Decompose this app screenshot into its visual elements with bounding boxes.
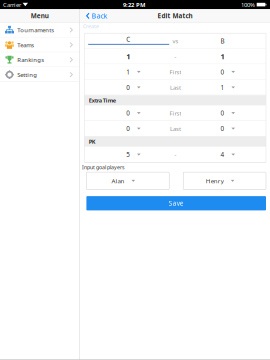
staticText: 1 xyxy=(126,51,130,62)
button[interactable]: Tournaments xyxy=(0,22,79,37)
staticText: B xyxy=(221,37,225,45)
staticText: First xyxy=(169,68,181,76)
staticText: Extra Time xyxy=(89,96,116,104)
staticText: 4 xyxy=(221,150,225,159)
staticText: 0 xyxy=(221,109,225,117)
staticText: 1 xyxy=(221,83,225,92)
button[interactable]: Henry xyxy=(183,172,266,190)
staticText: Last xyxy=(170,125,181,133)
staticText: - xyxy=(174,151,176,159)
staticText: 0 xyxy=(221,68,225,76)
staticText: Henry xyxy=(206,177,224,185)
button[interactable]: Teams xyxy=(0,37,79,52)
staticText: 0 xyxy=(126,83,130,92)
button[interactable]: Save xyxy=(86,196,266,210)
staticText: Input goal players xyxy=(82,164,124,171)
staticText: vs xyxy=(172,37,178,45)
staticText: PK xyxy=(89,138,96,145)
staticText: Setting xyxy=(17,71,37,79)
staticText: First xyxy=(169,109,181,117)
staticText: Menu xyxy=(31,11,49,20)
staticText: C xyxy=(126,35,130,44)
staticText: 1 xyxy=(126,68,130,76)
staticText: Carrier xyxy=(3,1,21,9)
staticText: Edit Match xyxy=(157,11,192,20)
staticText: Create xyxy=(83,23,99,30)
staticText: Rankings xyxy=(17,56,44,64)
button[interactable]: Setting xyxy=(0,67,79,82)
button[interactable]: Back xyxy=(83,9,110,22)
staticText: Tournaments xyxy=(17,26,54,34)
staticText: Alan xyxy=(111,177,124,185)
staticText: - xyxy=(174,52,176,60)
staticText: 5 xyxy=(126,150,130,159)
staticText: 0 xyxy=(126,124,130,133)
staticText: 0 xyxy=(221,124,225,133)
staticText: Last xyxy=(170,83,181,91)
staticText: 1 xyxy=(221,51,225,62)
staticText: Back xyxy=(92,11,108,20)
staticText: Teams xyxy=(17,41,34,49)
staticText: 100% xyxy=(241,1,255,9)
staticText: Save xyxy=(169,199,184,208)
staticText: 9:22 PM xyxy=(123,1,146,9)
staticText: 0 xyxy=(126,109,130,117)
button[interactable]: Alan xyxy=(86,172,169,190)
button[interactable]: Rankings xyxy=(0,52,79,67)
